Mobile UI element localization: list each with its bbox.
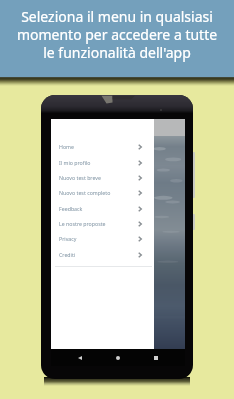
button[interactable]: Feedback <box>51 201 154 216</box>
button[interactable]: Le nostre proposte <box>51 216 154 231</box>
button[interactable]: Nuovo test breve <box>51 170 154 185</box>
staticText: Crediti <box>59 251 76 258</box>
staticText: Home <box>59 143 74 150</box>
staticText: Feedback <box>59 205 83 212</box>
button[interactable]: Il mio profilo <box>51 155 154 170</box>
staticText: Privacy <box>59 235 77 242</box>
button[interactable]: Privacy <box>51 231 154 246</box>
staticText: Le nostre proposte <box>59 220 106 227</box>
button[interactable]: Crediti <box>51 247 154 262</box>
button[interactable]: Recents <box>150 352 162 364</box>
staticText: Seleziona il menu in qualsiasi momento p… <box>0 7 234 62</box>
button[interactable]: Home <box>51 139 154 154</box>
staticText: Il mio profilo <box>59 159 91 166</box>
button[interactable]: Home <box>112 352 124 364</box>
staticText: Nuovo test breve <box>59 174 101 181</box>
button[interactable]: Nuovo test completo <box>51 185 154 200</box>
staticText: Nuovo test completo <box>59 189 111 196</box>
button[interactable]: Back <box>74 352 86 364</box>
